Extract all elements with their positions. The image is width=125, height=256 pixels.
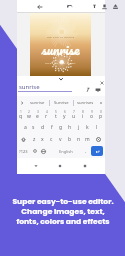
staticText: THE SUN IS RISING [46,35,75,38]
staticText: n [77,136,81,143]
button[interactable]: 6 [60,109,69,121]
staticText: t [55,113,57,120]
button[interactable]: Back [36,3,44,11]
staticText: u [72,113,76,120]
staticText: s [32,124,35,131]
staticText: d [41,124,45,131]
button[interactable] [17,96,26,109]
staticText: e [36,113,39,120]
staticText: 8 [82,110,84,114]
staticText: b [68,136,72,143]
button[interactable]: sunrise [18,81,73,93]
button[interactable]: Share [112,3,119,10]
button[interactable]: 7 [69,109,78,121]
button[interactable]: Home [55,161,65,171]
button[interactable]: sunrises [74,96,97,109]
staticText: sunrise [41,38,80,61]
staticText: i [82,113,84,120]
button[interactable]: d [38,121,47,133]
staticText: sunrise [30,100,45,106]
button[interactable]: 2 [25,109,33,121]
button[interactable]: sunrise [26,96,49,109]
button[interactable]: Back [31,161,41,171]
button[interactable]: THE SUN IS RISING [30,13,91,76]
button[interactable]: v [56,133,65,145]
button[interactable]: 9 [87,109,96,121]
staticText: g [59,124,63,131]
staticText: f [51,124,53,131]
staticText: v [59,136,62,143]
button[interactable]: h [65,121,74,133]
button[interactable]: b [65,133,74,145]
staticText: a [24,124,27,131]
button[interactable]: Undo [66,3,74,11]
staticText: q [19,113,23,120]
button[interactable]: Language [39,145,48,157]
staticText: h [68,124,72,131]
button[interactable]: Sunrise [50,96,73,109]
button[interactable]: k [83,121,92,133]
button[interactable]: . [83,145,89,157]
button[interactable]: Clear [99,80,105,86]
staticText: 7 [73,110,75,114]
button[interactable]: m [83,133,92,145]
staticText: 5 [55,110,57,114]
button[interactable]: Recents [80,161,90,171]
staticText: sunrises [77,100,94,106]
staticText: ?123 [19,149,28,154]
button[interactable]: 0 [96,109,105,121]
button[interactable]: ?123 [17,145,30,157]
button[interactable]: 3 [33,109,42,121]
staticText: l [96,124,98,131]
staticText: 2 [28,110,30,114]
staticText: w [27,113,31,120]
staticText: 1 [20,110,22,114]
staticText: r [45,113,48,120]
staticText: . [85,148,87,155]
staticText: k [86,124,89,131]
staticText: m [85,136,90,143]
button[interactable]: Text [91,3,98,10]
button[interactable]: c [47,133,56,145]
button[interactable]: Backspace [92,133,105,145]
staticText: 9 [91,110,93,114]
button[interactable]: Enter [91,146,103,156]
staticText: WAKE UP AND ENJOY [45,61,76,64]
button[interactable]: Keyboard [95,87,101,93]
button[interactable]: a [21,121,29,133]
button[interactable]: x [38,133,47,145]
staticText: 6 [64,110,66,114]
button[interactable]: j [74,121,83,133]
button[interactable]: Font [85,87,91,93]
button[interactable]: English [48,145,83,157]
button[interactable]: Emoji [30,145,39,157]
staticText: c [50,136,53,143]
button[interactable]: Shift [17,133,30,145]
button[interactable]: n [74,133,83,145]
button[interactable]: l [92,121,101,133]
staticText: sunrise [19,83,40,91]
staticText: y [63,113,66,120]
button[interactable]: Save [101,3,108,10]
button[interactable]: z [30,133,38,145]
button[interactable]: 5 [51,109,60,121]
staticText: o [90,113,94,120]
staticText: x [41,136,44,143]
staticText: Super easy-to-use editor. Change images,… [12,196,114,227]
button[interactable]: 4 [42,109,51,121]
button[interactable] [97,96,105,109]
button[interactable]: g [56,121,65,133]
staticText: 0 [100,110,102,114]
staticText: 4 [46,110,48,114]
button[interactable]: 8 [78,109,87,121]
button[interactable]: s [29,121,38,133]
staticText: p [99,113,103,120]
staticText: z [33,136,36,143]
button[interactable]: 1 [17,109,25,121]
button[interactable]: f [47,121,56,133]
staticText: 3 [37,110,39,114]
staticText: English [59,149,73,154]
staticText: j [78,124,80,131]
staticText: Sunrise [54,100,69,106]
